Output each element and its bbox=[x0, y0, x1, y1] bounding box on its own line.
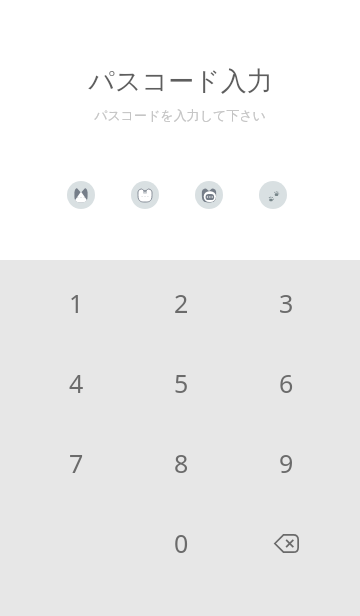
button[interactable]: 8 bbox=[129, 423, 234, 503]
staticText: 5 bbox=[174, 366, 189, 400]
staticText: 8 bbox=[174, 446, 189, 480]
button[interactable]: 3 bbox=[234, 263, 339, 343]
button[interactable]: 2 bbox=[129, 263, 234, 343]
button[interactable]: 0 bbox=[129, 503, 234, 583]
staticText: パスコードを入力して下さい bbox=[94, 107, 266, 123]
staticText: 9 bbox=[279, 446, 294, 480]
other: Backspace bbox=[274, 534, 299, 553]
button[interactable]: 7 bbox=[24, 423, 129, 503]
staticText: 3 bbox=[279, 286, 294, 320]
staticText: 0 bbox=[174, 526, 189, 560]
staticText: パスコード入力 bbox=[88, 65, 273, 98]
button[interactable]: Backspace bbox=[234, 503, 339, 583]
staticText: 2 bbox=[174, 286, 189, 320]
button[interactable]: 5 bbox=[129, 343, 234, 423]
button[interactable]: 9 bbox=[234, 423, 339, 503]
staticText: 1 bbox=[69, 286, 84, 320]
button[interactable]: 1 bbox=[24, 263, 129, 343]
staticText: 7 bbox=[69, 446, 84, 480]
button[interactable]: 6 bbox=[234, 343, 339, 423]
button[interactable]: 4 bbox=[24, 343, 129, 423]
staticText: 4 bbox=[69, 366, 84, 400]
staticText: 6 bbox=[279, 366, 294, 400]
